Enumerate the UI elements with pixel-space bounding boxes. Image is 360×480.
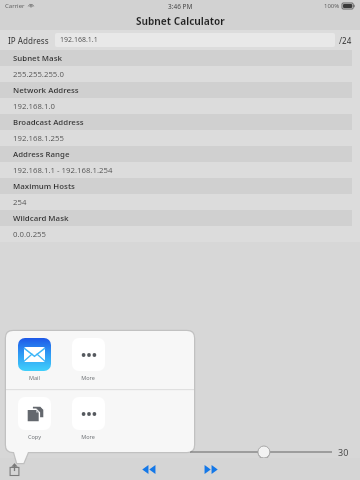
button[interactable]: 255.255.255.0 [0,66,360,82]
staticText: Subnet Mask [13,53,63,64]
staticText: Subnet Calculator [136,14,225,28]
button[interactable]: 192.168.1.1 - 192.168.1.254 [0,162,360,178]
staticText: Copy [28,433,41,440]
staticText: 255.255.255.0 [13,69,64,80]
staticText: Broadcast Address [13,117,84,128]
staticText: 100% [324,2,340,10]
button[interactable]: Mail [12,331,56,381]
button[interactable]: More [66,390,110,440]
staticText: IP Address [8,35,49,46]
button[interactable]: 0.0.0.255 [0,226,360,242]
staticText: More [81,374,95,381]
staticText: 192.168.1.1 - 192.168.1.254 [13,165,113,176]
staticText: 192.168.1.1 [60,35,98,45]
button[interactable]: 192.168.1.0 [0,98,360,114]
staticText: 30 [338,446,349,458]
staticText: Mail [29,374,40,381]
staticText: Carrier [5,2,25,10]
staticText: Network Address [13,85,79,96]
button[interactable]: Subnet prefix slider [188,444,334,460]
staticText: 0.0.0.255 [13,229,47,240]
button[interactable]: Subnet Mask [0,50,360,66]
button[interactable]: 254 [0,194,360,210]
staticText: /24 [339,35,352,46]
button[interactable]: Broadcast Address [0,114,360,130]
staticText: Wildcard Mask [13,213,69,224]
button[interactable]: Address Range [0,146,360,162]
button[interactable]: 192.168.1.255 [0,130,360,146]
button[interactable]: Rewind [138,458,160,480]
staticText: 3:46 PM [168,2,193,11]
button[interactable]: More [66,331,110,381]
staticText: Maximum Hosts [13,181,75,192]
button[interactable]: Network Address [0,82,360,98]
staticText: 254 [13,197,27,208]
button[interactable]: Wildcard Mask [0,210,360,226]
staticText: More [81,433,95,440]
button[interactable]: Copy [12,390,56,440]
staticText: 192.168.1.255 [13,133,64,144]
button[interactable]: Fast forward [200,458,222,480]
staticText: 192.168.1.0 [13,101,55,112]
button[interactable]: Share [4,459,24,479]
staticText: Address Range [13,149,70,160]
button[interactable]: Maximum Hosts [0,178,360,194]
button[interactable]: 192.168.1.1 [55,33,335,47]
